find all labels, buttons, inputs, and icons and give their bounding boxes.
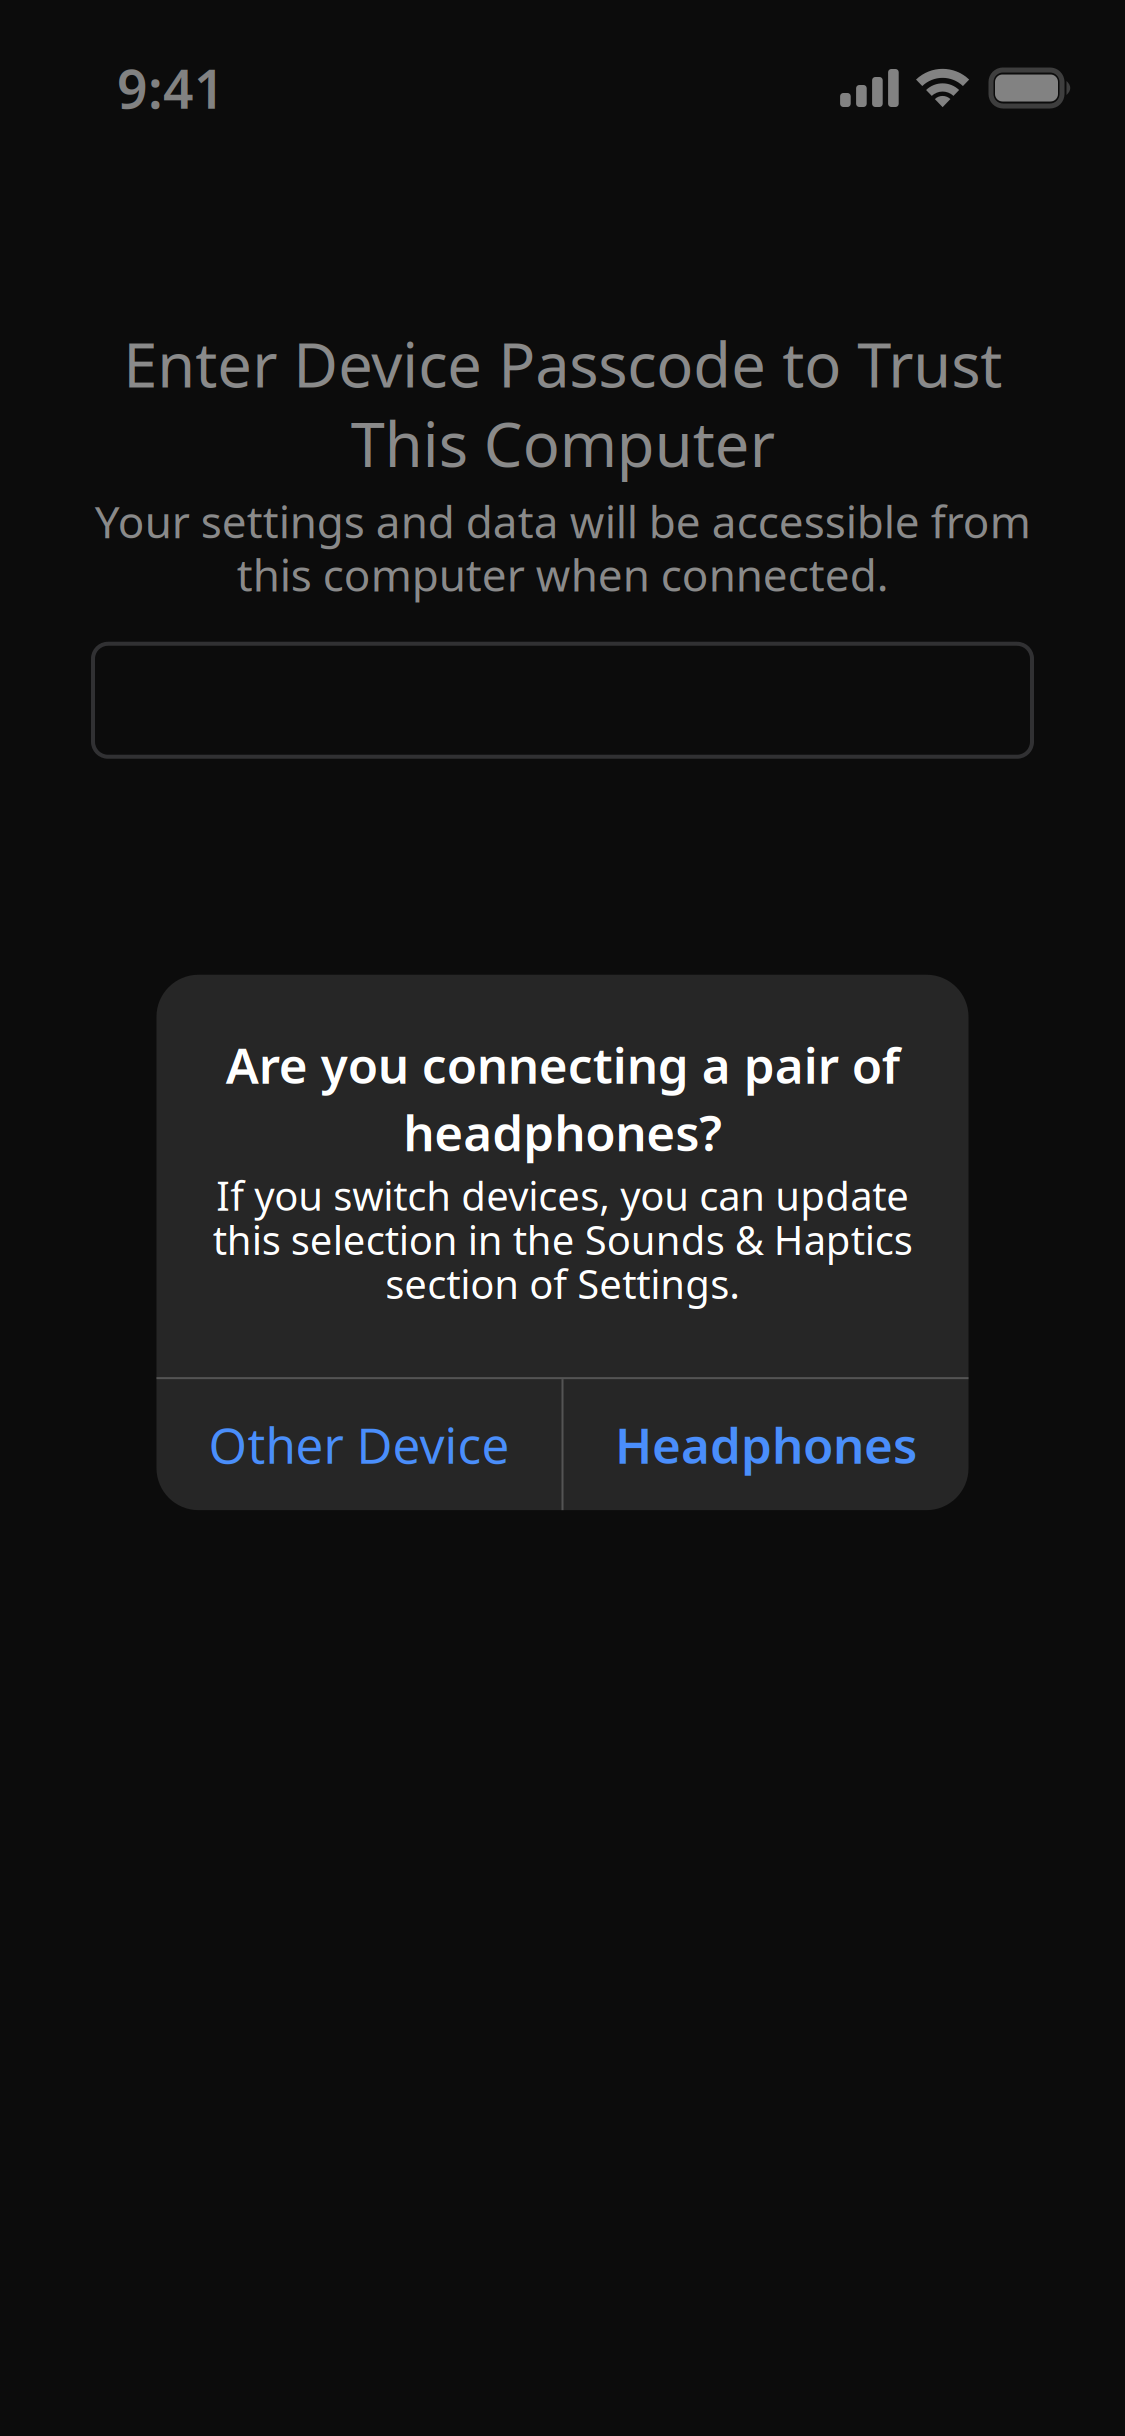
button[interactable]: Headphones xyxy=(563,1379,968,1510)
button[interactable]: Passcode xyxy=(93,644,1032,757)
button[interactable]: Other Device xyxy=(156,1379,561,1510)
staticText: Other Device xyxy=(208,1412,509,1477)
staticText: Your settings and data will be accessibl… xyxy=(94,492,1030,604)
staticText: 9:41 xyxy=(117,53,225,123)
staticText: Enter Device Passcode to Trust This Comp… xyxy=(123,323,1002,484)
staticText: If you switch devices, you can update th… xyxy=(212,1169,912,1310)
staticText: Headphones xyxy=(615,1412,917,1477)
staticText: Are you connecting a pair of headphones? xyxy=(225,1032,899,1165)
